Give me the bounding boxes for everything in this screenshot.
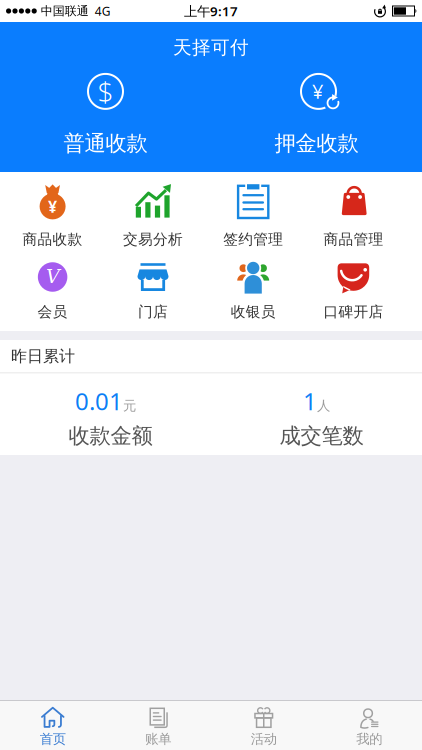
staticText: 签约管理 bbox=[223, 230, 283, 248]
staticText: 口碑开店 bbox=[323, 303, 383, 321]
staticText: 收款金额 bbox=[68, 423, 152, 449]
button[interactable]: 账单 bbox=[105, 701, 211, 750]
staticText: $ bbox=[97, 73, 113, 110]
staticText: 收银员 bbox=[231, 303, 276, 321]
button[interactable]: 我的 bbox=[316, 701, 422, 750]
button[interactable]: ¥ bbox=[221, 59, 411, 169]
button[interactable]: 首页 bbox=[0, 701, 105, 750]
staticText: ¥ bbox=[48, 196, 57, 217]
staticText: 交易分析 bbox=[123, 230, 183, 248]
staticText: 商品收款 bbox=[23, 230, 83, 248]
staticText: 元 bbox=[123, 398, 136, 414]
staticText: 普通收款 bbox=[63, 130, 147, 157]
button[interactable]: V bbox=[3, 251, 103, 331]
staticText: 中国联通 bbox=[41, 4, 89, 18]
button[interactable]: 门店 bbox=[103, 251, 203, 331]
button[interactable]: 商品管理 bbox=[303, 172, 403, 251]
staticText: 我的 bbox=[356, 731, 382, 747]
staticText: 商品管理 bbox=[323, 230, 383, 248]
staticText: 成交笔数 bbox=[279, 423, 363, 449]
staticText: 昨日累计 bbox=[11, 346, 75, 366]
staticText: 天择可付 bbox=[173, 36, 249, 59]
staticText: 押金收款 bbox=[274, 130, 358, 157]
staticText: 0.01 bbox=[75, 385, 123, 417]
button[interactable]: 口碑开店 bbox=[303, 251, 403, 331]
button[interactable]: $ bbox=[10, 59, 200, 169]
button[interactable]: 签约管理 bbox=[203, 172, 303, 251]
staticText: 首页 bbox=[40, 731, 66, 747]
staticText: 上午9:17 bbox=[184, 2, 238, 20]
staticText: 4G bbox=[95, 3, 111, 19]
staticText: 1 bbox=[303, 385, 317, 417]
staticText: 活动 bbox=[251, 731, 277, 747]
staticText: 门店 bbox=[138, 303, 168, 321]
button[interactable]: ¥ bbox=[3, 172, 103, 251]
staticText: 人 bbox=[317, 398, 330, 414]
staticText: 账单 bbox=[145, 731, 171, 747]
button[interactable]: 活动 bbox=[211, 701, 316, 750]
button[interactable]: 收银员 bbox=[203, 251, 303, 331]
staticText: V bbox=[46, 265, 60, 287]
staticText: 会员 bbox=[38, 303, 68, 321]
button[interactable]: 交易分析 bbox=[103, 172, 203, 251]
staticText: ¥ bbox=[312, 78, 323, 104]
